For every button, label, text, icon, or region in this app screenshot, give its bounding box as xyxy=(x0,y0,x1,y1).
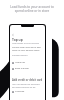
staticText: Add money to your account xyxy=(12,42,40,45)
staticText: Choose how you'd like to add funds to yo… xyxy=(12,46,43,52)
staticText: Load funds to your account to spend onli… xyxy=(6,5,58,13)
button[interactable]: Apple Pay xyxy=(12,61,43,64)
button[interactable]: Bank transfer xyxy=(12,67,43,70)
staticText: Payment method xyxy=(12,54,28,57)
staticText: Continue xyxy=(15,90,25,93)
staticText: Apple Pay xyxy=(15,61,26,64)
staticText: Top up xyxy=(12,37,23,41)
button[interactable] xyxy=(12,34,14,36)
staticText: Bank transfer xyxy=(15,67,29,70)
staticText: Your card details are encrypted and stor… xyxy=(12,83,43,88)
button[interactable]: Continue xyxy=(12,90,43,93)
staticText: Add credit or debit card xyxy=(12,78,43,82)
